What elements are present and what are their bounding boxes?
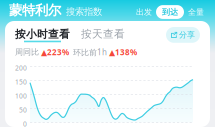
button[interactable]: 按天查看	[70, 27, 125, 42]
staticText: 蒙特利尔	[9, 2, 61, 18]
button[interactable]: 全量	[186, 5, 206, 19]
staticText: 到达	[162, 7, 178, 17]
button[interactable]: 到达	[156, 5, 184, 19]
button[interactable]: 分享	[166, 27, 200, 43]
staticText: 搜索指数	[66, 6, 102, 17]
staticText: 周同比	[15, 47, 39, 57]
staticText: 100	[15, 91, 27, 100]
staticText: 按小时查看	[15, 28, 70, 41]
staticText: 分享	[179, 30, 195, 40]
staticText: 150	[15, 77, 27, 86]
staticText: 200	[15, 63, 27, 72]
staticText: 出发	[136, 7, 152, 17]
staticText: ▲223%	[41, 47, 69, 57]
staticText: 全量	[188, 7, 204, 17]
staticText: 环比前1h	[73, 47, 107, 57]
button[interactable]: 按小时查看	[15, 28, 70, 42]
staticText: 50	[19, 105, 27, 114]
staticText: ▲138%	[109, 47, 137, 57]
staticText: 0	[23, 119, 27, 127]
button[interactable]: 出发	[134, 5, 154, 19]
staticText: 按天查看	[81, 27, 125, 40]
